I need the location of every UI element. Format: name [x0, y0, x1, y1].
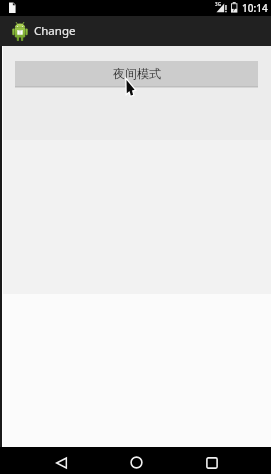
button[interactable]: Back [37, 447, 85, 474]
staticText: 3G [215, 1, 221, 7]
button[interactable]: Home [112, 447, 160, 474]
staticText: 夜间模式 [113, 66, 161, 81]
staticText: 10:14 [242, 1, 268, 15]
button[interactable]: Recent apps [188, 447, 236, 474]
staticText: Change [34, 23, 76, 39]
button[interactable]: 夜间模式 [15, 61, 258, 86]
